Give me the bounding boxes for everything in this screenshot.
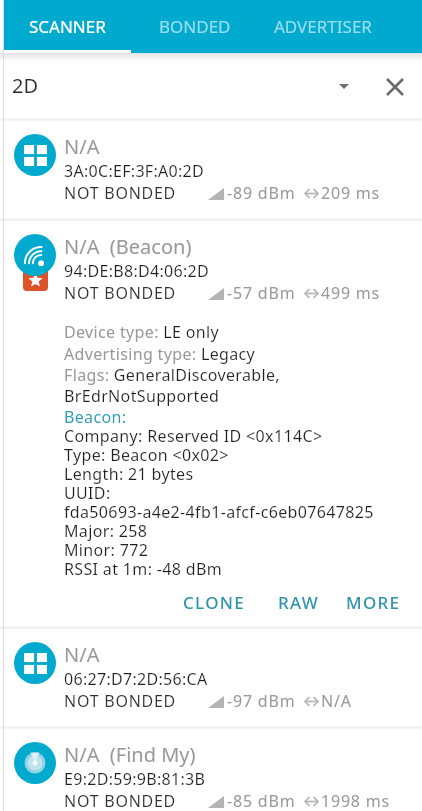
button[interactable]: ADVERTISER <box>259 0 387 53</box>
button[interactable]: N/A (Beacon) <box>0 221 422 627</box>
staticText: NOT BONDED <box>64 690 177 712</box>
staticText: N/A <box>64 641 100 668</box>
staticText: MORE <box>346 591 401 614</box>
button[interactable]: BONDED <box>131 0 259 53</box>
staticText: N/A (Beacon) <box>64 233 192 260</box>
staticText: 1998 ms <box>321 790 390 811</box>
staticText: N/A (Find My) <box>64 741 196 768</box>
staticText: NOT BONDED <box>64 790 177 811</box>
button[interactable]: SCANNER <box>3 0 131 53</box>
staticText: N/A <box>64 133 100 160</box>
staticText: NOT BONDED <box>64 282 177 304</box>
staticText: 209 ms <box>321 182 381 204</box>
button[interactable]: MORE <box>332 583 415 622</box>
button[interactable]: CLONE <box>169 583 260 622</box>
staticText: E9:2D:59:9B:81:3B <box>64 768 206 790</box>
button[interactable]: RAW <box>264 583 334 622</box>
staticText: 499 ms <box>321 282 381 304</box>
staticText: NOT BONDED <box>64 182 177 204</box>
staticText: CLONE <box>183 591 246 614</box>
staticText: SCANNER <box>29 15 106 38</box>
staticText: RAW <box>278 591 320 614</box>
button[interactable]: N/A <box>0 121 422 219</box>
staticText: ADVERTISER <box>274 15 372 38</box>
button[interactable]: Filter menu <box>325 53 363 119</box>
button[interactable]: Clear filter <box>376 53 414 119</box>
staticText: -89 dBm <box>227 182 296 204</box>
staticText: -97 dBm <box>227 690 296 712</box>
staticText: 2D <box>12 72 39 99</box>
staticText: Beacon: Company: Reserved ID <0x114C> Ty… <box>64 406 374 580</box>
staticText: 06:27:D7:2D:56:CA <box>64 668 208 690</box>
staticText: -57 dBm <box>227 282 296 304</box>
staticText: 3A:0C:EF:3F:A0:2D <box>64 160 205 182</box>
button[interactable]: N/A <box>0 629 422 727</box>
staticText: N/A <box>321 690 352 712</box>
button[interactable]: N/A (Find My) <box>0 729 422 811</box>
staticText: BONDED <box>159 15 231 38</box>
staticText: 94:DE:B8:D4:06:2D <box>64 260 209 282</box>
staticText: -85 dBm <box>227 790 296 811</box>
staticText: Device type: LE only Advertising type: L… <box>64 321 364 406</box>
